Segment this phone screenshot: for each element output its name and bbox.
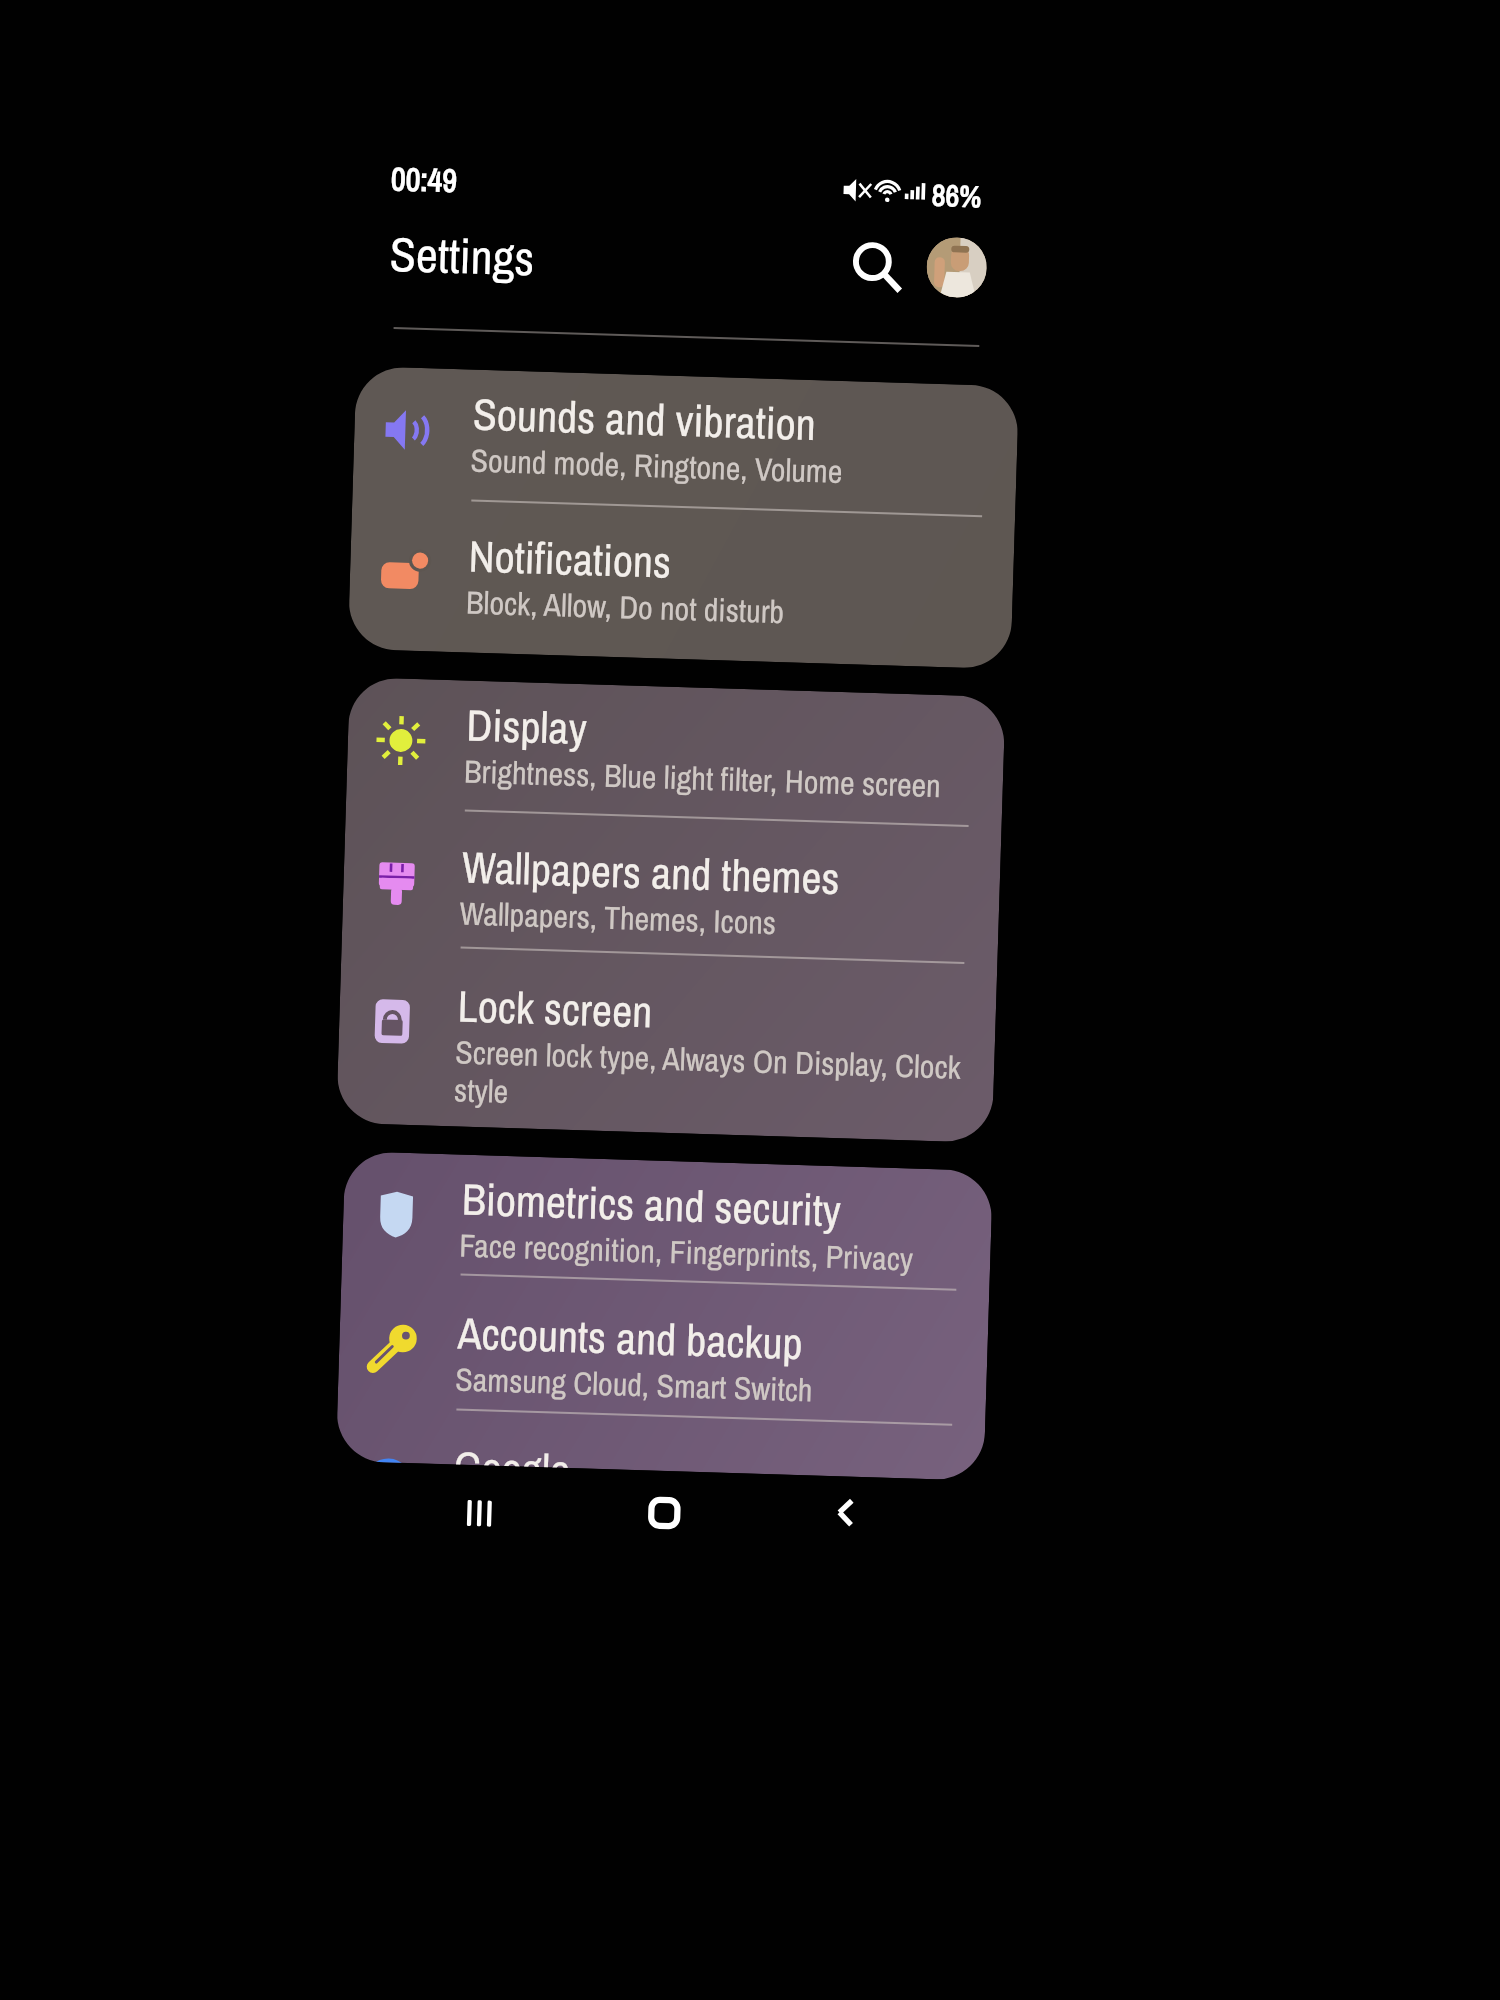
staticText: Display (466, 695, 588, 757)
staticText: Lock screen (457, 975, 654, 1040)
staticText: 00:49 (390, 157, 458, 202)
staticText: Sound mode, Ringtone, Volume (470, 439, 844, 493)
staticText: Wallpapers, Themes, Icons (459, 891, 777, 944)
staticText: Samsung Cloud, Smart Switch (455, 1357, 814, 1411)
staticText: Brightness, Blue light filter, Home scre… (463, 749, 941, 807)
button[interactable]: Recents (445, 1477, 517, 1549)
button[interactable]: Profile (926, 236, 988, 298)
button[interactable]: Display (346, 681, 1005, 835)
staticText: Face recognition, Fingerprints, Privacy (459, 1224, 914, 1280)
staticText: Wallpapers and themes (461, 836, 841, 907)
button[interactable]: Home (628, 1477, 700, 1549)
button[interactable]: Wallpapers and themes (341, 823, 1001, 977)
button[interactable]: Accounts and backup (337, 1289, 989, 1443)
staticText: Settings (389, 221, 536, 290)
button[interactable]: Search (840, 230, 912, 302)
button[interactable]: Notifications (348, 512, 1015, 666)
staticText: 86% (931, 175, 982, 216)
staticText: Block, Allow, Do not disturb (466, 580, 785, 633)
staticText: Biometrics and security (461, 1169, 843, 1239)
staticText: Notifications (468, 525, 672, 591)
button[interactable]: Lock screen (337, 962, 997, 1116)
staticText: Screen lock type, Always On Display, Clo… (454, 1030, 972, 1127)
button[interactable]: Biometrics and security (341, 1155, 993, 1309)
button[interactable]: Back (810, 1476, 882, 1549)
staticText: Sounds and vibration (472, 384, 818, 453)
button[interactable]: Sounds and vibration (352, 370, 1019, 524)
button[interactable]: Google (336, 1423, 985, 1481)
staticText: Google (454, 1436, 571, 1468)
staticText: Accounts and backup (457, 1303, 804, 1372)
